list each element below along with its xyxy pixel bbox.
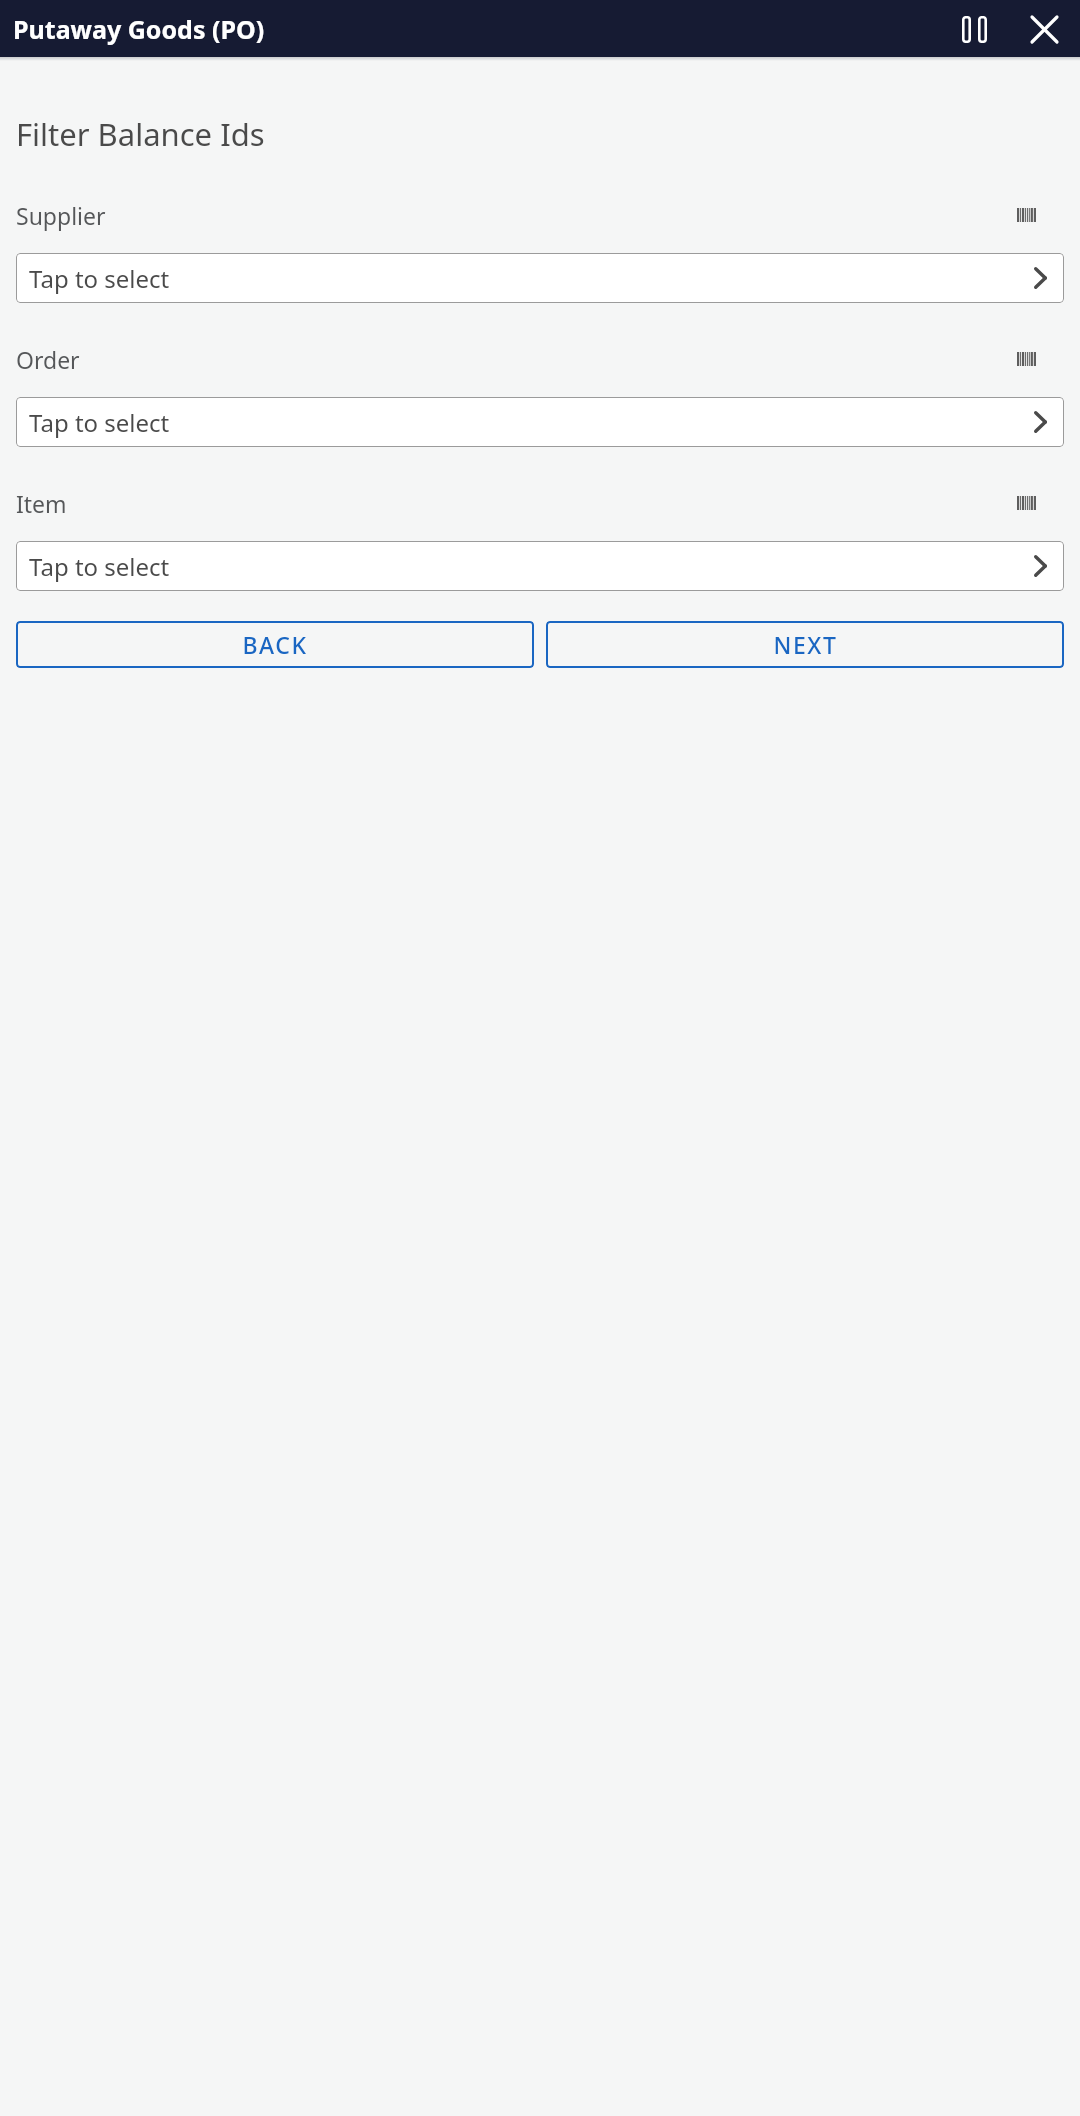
staticText: Tap to select [29, 406, 170, 439]
button[interactable]: NEXT [546, 621, 1064, 668]
button[interactable]: BACK [16, 621, 534, 668]
staticText: BACK [242, 629, 308, 660]
button[interactable]: Scan Item barcode [1004, 481, 1048, 525]
button[interactable]: Tap to select [16, 541, 1064, 591]
button[interactable]: Tap to select [16, 397, 1064, 447]
button[interactable]: Tap to select [16, 253, 1064, 303]
button[interactable]: Scan Order barcode [1004, 337, 1048, 381]
staticText: Filter Balance Ids [16, 113, 265, 155]
staticText: Supplier [16, 200, 106, 231]
button[interactable]: Split view [948, 3, 1000, 55]
staticText: Putaway Goods (PO) [13, 12, 265, 46]
staticText: Tap to select [29, 262, 170, 295]
staticText: Item [16, 488, 67, 519]
staticText: Order [16, 344, 80, 375]
button[interactable]: Scan Supplier barcode [1004, 193, 1048, 237]
staticText: NEXT [773, 629, 838, 660]
button[interactable]: Close [1018, 3, 1070, 55]
staticText: Tap to select [29, 550, 170, 583]
